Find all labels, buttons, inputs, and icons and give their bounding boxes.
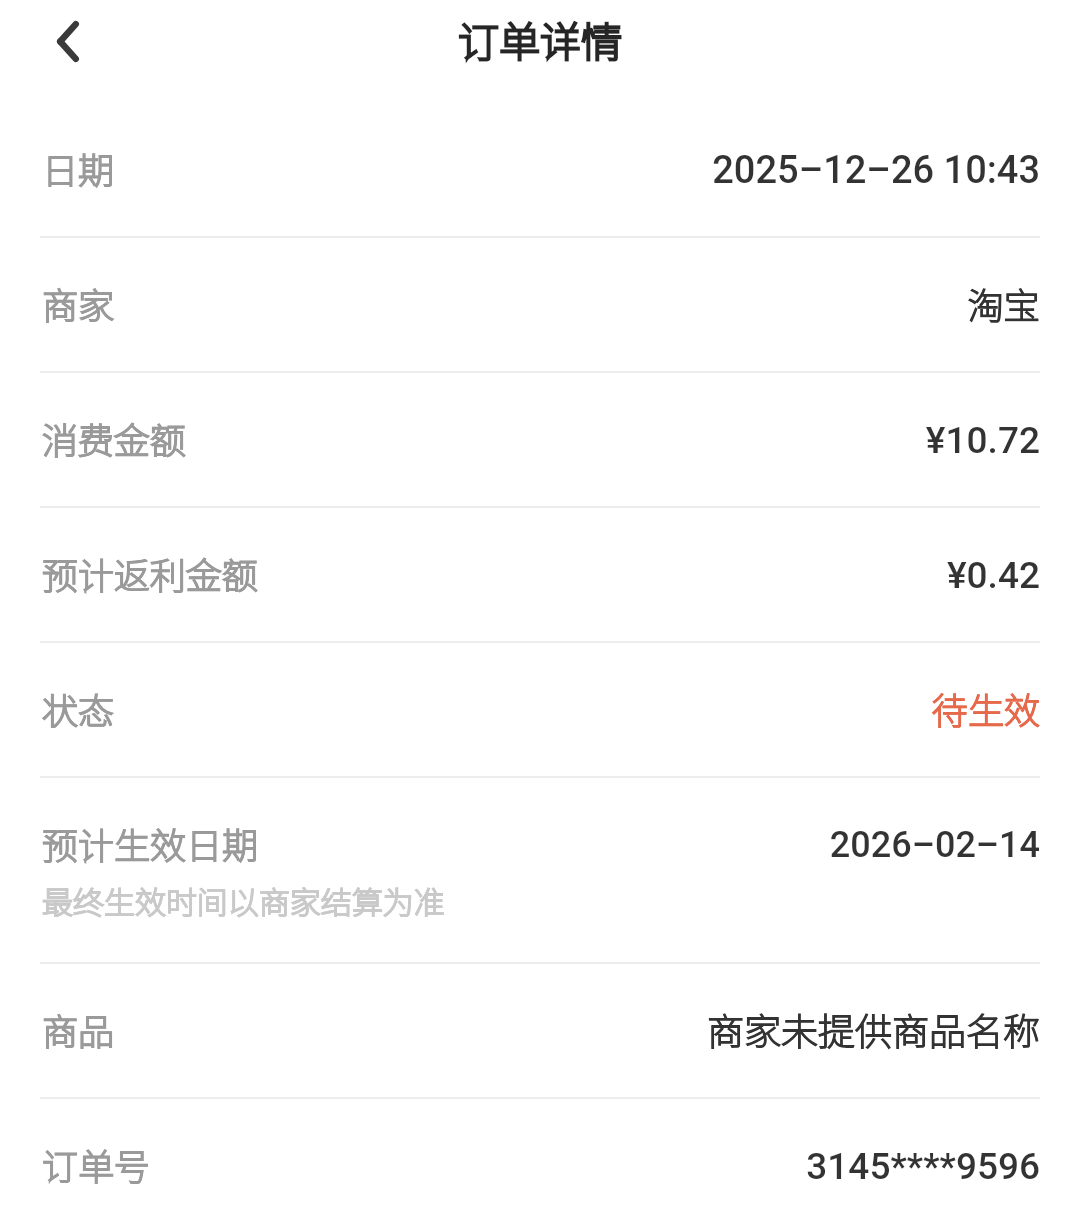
staticText: 商家 [42, 277, 115, 329]
staticText: 商家 [42, 277, 115, 329]
staticText: 日期 [42, 142, 115, 194]
staticText: 待生效 [931, 682, 1040, 734]
staticText: 淘宝 [967, 277, 1040, 329]
staticText: 状态 [42, 682, 115, 734]
staticText: 预计生效日期 [42, 817, 259, 869]
button[interactable]: Back [20, 0, 116, 83]
staticText: 2026–02–14 [829, 824, 1040, 866]
button[interactable]: 消费金额 [0, 373, 1080, 506]
staticText: 订单详情 [458, 9, 622, 68]
staticText: 2025–12–26 10:43 [712, 148, 1040, 193]
staticText: 日期 [42, 142, 115, 194]
staticText: 订单号 [42, 1138, 151, 1190]
staticText: ¥10.72 [925, 419, 1040, 462]
staticText: 最终生效时间以商家结算为准 [42, 878, 445, 923]
staticText: ¥0.42 [946, 554, 1040, 597]
staticText: 预计生效日期 [42, 817, 259, 869]
staticText: 订单详情 [458, 9, 622, 68]
button[interactable]: 商品 [0, 964, 1080, 1097]
button[interactable]: 日期 [0, 103, 1080, 236]
staticText: 状态 [42, 682, 115, 734]
staticText: 商品 [42, 1003, 115, 1055]
staticText: 预计返利金额 [42, 547, 259, 599]
staticText: 商家未提供商品名称 [707, 1002, 1040, 1056]
button[interactable]: 状态 [0, 643, 1080, 776]
staticText: 消费金额 [42, 412, 187, 464]
button[interactable]: 预计生效日期 [0, 778, 1080, 962]
button[interactable]: 订单号 [0, 1099, 1080, 1219]
staticText: 预计返利金额 [42, 547, 259, 599]
staticText: 最终生效时间以商家结算为准 [42, 878, 445, 923]
staticText: 淘宝 [967, 277, 1040, 329]
staticText: 商品 [42, 1003, 115, 1055]
staticText: 消费金额 [42, 412, 187, 464]
button[interactable]: 预计返利金额 [0, 508, 1080, 641]
staticText: 待生效 [931, 682, 1040, 734]
staticText: 3145****9596 [806, 1145, 1040, 1188]
button[interactable]: 商家 [0, 238, 1080, 371]
staticText: 订单号 [42, 1138, 151, 1190]
staticText: 商家未提供商品名称 [707, 1002, 1040, 1056]
